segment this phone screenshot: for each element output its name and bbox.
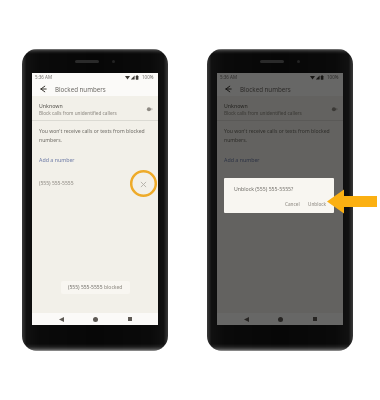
button[interactable]: Cancel — [282, 199, 303, 209]
button[interactable]: Home — [274, 313, 286, 325]
button[interactable]: Add a number — [32, 156, 82, 163]
staticText: 100% — [327, 74, 339, 80]
button[interactable]: Unblock — [305, 199, 330, 209]
staticText: Unblock — [308, 201, 327, 207]
button[interactable]: Recent apps — [309, 313, 321, 325]
staticText: Block calls from unidentified callers — [224, 110, 302, 116]
button[interactable]: Unblock number — [315, 171, 342, 196]
button[interactable]: Home — [89, 313, 101, 325]
staticText: (555) 555-5555 — [68, 284, 104, 291]
staticText: 5:36 AM — [35, 74, 53, 80]
button[interactable]: Unknown — [217, 96, 343, 120]
button[interactable]: Unknown — [32, 96, 158, 120]
staticText: 100% — [142, 74, 154, 80]
button[interactable]: Recent apps — [124, 313, 136, 325]
button[interactable]: Back — [221, 82, 234, 95]
button[interactable]: Unblock number — [130, 171, 157, 196]
staticText: 5:36 AM — [220, 74, 238, 80]
staticText: blocked — [104, 284, 123, 291]
staticText: Block calls from unidentified callers — [39, 110, 117, 116]
button[interactable]: Back — [240, 313, 252, 325]
button[interactable]: Back — [36, 82, 49, 95]
staticText: Unblock (555) 555-5555? — [234, 185, 294, 192]
button[interactable]: Add a number — [217, 156, 267, 163]
staticText: You won't receive calls or texts from bl… — [39, 128, 156, 144]
staticText: (555) 555-5555 — [39, 180, 74, 187]
staticText: Blocked numbers — [55, 85, 106, 93]
staticText: Blocked numbers — [240, 85, 291, 93]
staticText: You won't receive calls or texts from bl… — [224, 128, 341, 144]
button[interactable]: Back — [55, 313, 67, 325]
staticText: Cancel — [285, 201, 300, 207]
staticText: Unknown — [224, 102, 248, 109]
staticText: Unknown — [39, 102, 63, 109]
